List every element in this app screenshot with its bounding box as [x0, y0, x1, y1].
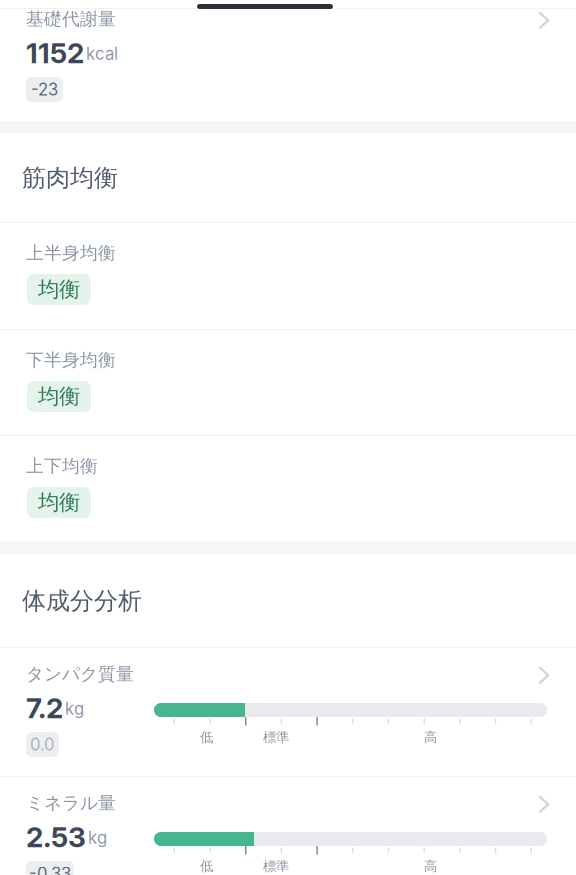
button[interactable]: 下半身均衡 [0, 330, 576, 435]
staticText: タンパク質量 [26, 663, 134, 685]
staticText: 均衡 [38, 489, 80, 516]
staticText: -0.33 [29, 863, 71, 875]
staticText: 筋肉均衡 [22, 163, 118, 193]
staticText: 1152 [26, 36, 84, 70]
staticText: 低 [200, 729, 213, 746]
staticText: 基礎代謝量 [26, 8, 116, 30]
button[interactable]: タンパク質量 [0, 648, 576, 776]
staticText: 高 [424, 858, 437, 875]
staticText: 2.53 [26, 820, 86, 854]
staticText: 高 [424, 729, 437, 746]
button[interactable]: 上半身均衡 [0, 223, 576, 329]
staticText: 上半身均衡 [26, 242, 116, 264]
staticText: ミネラル量 [26, 792, 116, 814]
staticText: 0.0 [30, 734, 55, 755]
staticText: 体成分分析 [22, 586, 142, 616]
staticText: 下半身均衡 [26, 349, 116, 371]
button[interactable]: 基礎代謝量 [0, 0, 576, 121]
staticText: 標準 [263, 858, 289, 875]
staticText: kcal [86, 44, 118, 64]
staticText: 標準 [263, 729, 289, 746]
staticText: 均衡 [38, 276, 80, 303]
staticText: -23 [31, 79, 58, 100]
staticText: 7.2 [26, 691, 63, 725]
staticText: 低 [200, 858, 213, 875]
staticText: 上下均衡 [26, 455, 98, 477]
staticText: kg [88, 828, 107, 848]
staticText: kg [65, 699, 84, 719]
button[interactable]: 上下均衡 [0, 436, 576, 541]
button[interactable]: ミネラル量 [0, 777, 576, 875]
staticText: 均衡 [38, 383, 80, 410]
